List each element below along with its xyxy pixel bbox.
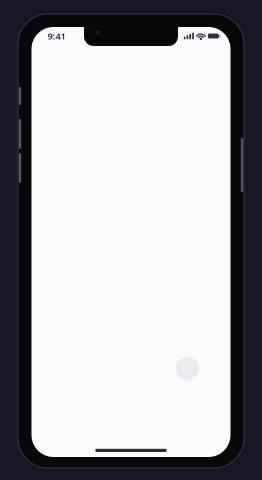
staticText: 9:41 bbox=[47, 30, 65, 42]
button[interactable]: Compose bbox=[174, 354, 200, 380]
